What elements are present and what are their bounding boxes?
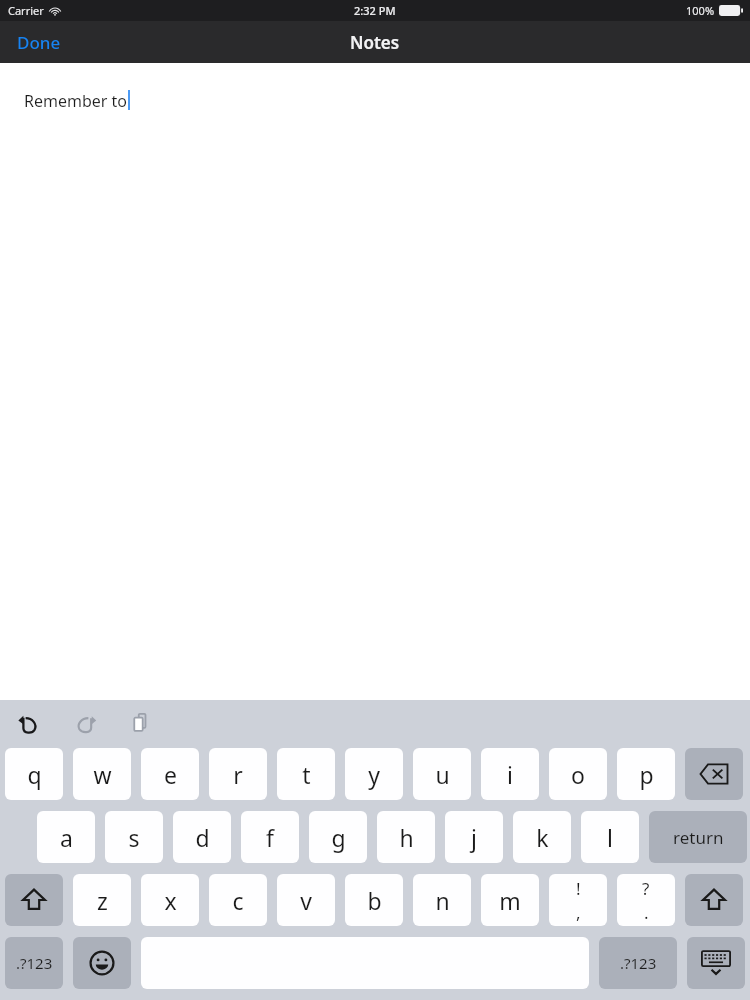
button[interactable]: s	[105, 811, 163, 863]
button[interactable]: n	[413, 874, 471, 926]
staticText: e	[164, 759, 177, 790]
staticText: y	[368, 759, 380, 790]
staticText: return	[673, 826, 724, 849]
button[interactable]: k	[513, 811, 571, 863]
staticText: u	[435, 759, 450, 790]
button[interactable]: z	[73, 874, 131, 926]
staticText: v	[300, 885, 312, 916]
button[interactable]: Remember to	[0, 63, 750, 700]
staticText: x	[164, 885, 177, 916]
button[interactable]: Emoji	[73, 937, 131, 989]
button[interactable]: Shift	[5, 874, 63, 926]
staticText: c	[232, 885, 244, 916]
button[interactable]: .?123	[599, 937, 677, 989]
button[interactable]: f	[241, 811, 299, 863]
button[interactable]: b	[345, 874, 403, 926]
staticText: r	[233, 759, 243, 790]
staticText: .	[644, 901, 649, 924]
staticText: Done	[17, 31, 61, 54]
staticText: t	[302, 759, 311, 790]
button[interactable]	[685, 748, 743, 800]
button[interactable]: c	[209, 874, 267, 926]
button[interactable]: d	[173, 811, 231, 863]
button[interactable]: e	[141, 748, 199, 800]
staticText: a	[60, 822, 73, 853]
button[interactable]: Copy	[118, 702, 164, 744]
staticText: w	[93, 759, 112, 790]
staticText: m	[499, 885, 521, 916]
staticText: h	[399, 822, 414, 853]
staticText: 2:32 PM	[354, 3, 396, 18]
button[interactable]: i	[481, 748, 539, 800]
button[interactable]: g	[309, 811, 367, 863]
button[interactable]: ?	[617, 874, 675, 926]
staticText: !	[576, 877, 581, 900]
button[interactable]: u	[413, 748, 471, 800]
staticText: f	[266, 822, 274, 853]
button[interactable]: Hide keyboard	[687, 937, 745, 989]
staticText: 100%	[686, 3, 715, 18]
staticText: Notes	[350, 31, 400, 54]
staticText: s	[128, 822, 140, 853]
staticText: ,	[576, 901, 581, 924]
button[interactable]: w	[73, 748, 131, 800]
button[interactable]: j	[445, 811, 503, 863]
button[interactable]: !	[549, 874, 607, 926]
button[interactable]: o	[549, 748, 607, 800]
staticText: Carrier	[8, 3, 44, 18]
button[interactable]: Shift	[685, 874, 743, 926]
button[interactable]: l	[581, 811, 639, 863]
staticText: p	[639, 759, 654, 790]
button[interactable]: v	[277, 874, 335, 926]
staticText: q	[27, 759, 42, 790]
button[interactable]: .?123	[5, 937, 63, 989]
button[interactable]: t	[277, 748, 335, 800]
button[interactable]: h	[377, 811, 435, 863]
button[interactable]: Redo	[62, 702, 108, 744]
button[interactable]: m	[481, 874, 539, 926]
button[interactable]: Done	[0, 23, 78, 62]
staticText: j	[471, 822, 477, 853]
staticText: n	[435, 885, 450, 916]
staticText: k	[536, 822, 549, 853]
button[interactable]: a	[37, 811, 95, 863]
button[interactable]: y	[345, 748, 403, 800]
button[interactable]: p	[617, 748, 675, 800]
button[interactable]: q	[5, 748, 63, 800]
staticText: l	[607, 822, 613, 853]
staticText: b	[367, 885, 382, 916]
staticText: .?123	[620, 953, 657, 973]
button[interactable]: return	[649, 811, 747, 863]
staticText: o	[571, 759, 585, 790]
staticText: ?	[642, 877, 650, 900]
button[interactable]: r	[209, 748, 267, 800]
button[interactable]: x	[141, 874, 199, 926]
staticText: .?123	[16, 953, 53, 973]
staticText: Remember to	[24, 90, 128, 112]
staticText: i	[507, 759, 513, 790]
staticText: d	[195, 822, 210, 853]
staticText: g	[331, 822, 346, 853]
button[interactable]: Undo	[6, 702, 52, 744]
staticText: z	[97, 885, 108, 916]
